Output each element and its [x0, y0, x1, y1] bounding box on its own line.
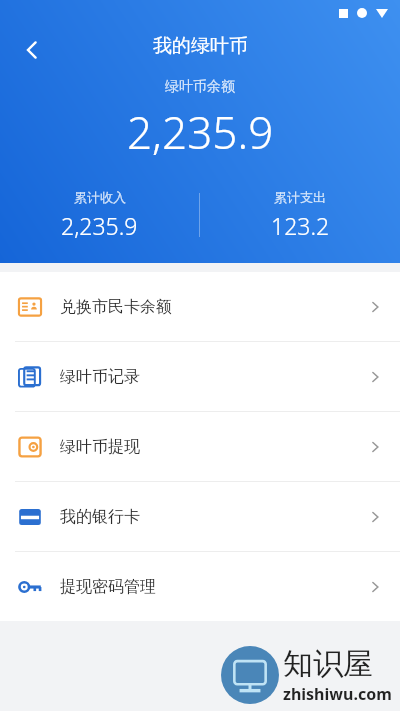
staticText: 我的银行卡: [60, 507, 140, 527]
staticText: 提现密码管理: [60, 577, 156, 597]
staticText: 累计收入: [74, 189, 126, 205]
staticText: 我的绿叶币: [153, 34, 248, 58]
button[interactable]: Back: [12, 30, 52, 70]
staticText: 知识屋: [283, 645, 373, 683]
staticText: 2,235.9: [61, 210, 138, 241]
staticText: 累计支出: [274, 189, 326, 205]
staticText: 2,235.9: [127, 102, 274, 162]
staticText: zhishiwu.com: [283, 683, 392, 705]
staticText: 123.2: [271, 210, 330, 241]
button[interactable]: 绿叶币提现: [0, 412, 400, 481]
staticText: 绿叶币提现: [60, 437, 140, 457]
button[interactable]: 提现密码管理: [0, 552, 400, 621]
button[interactable]: 绿叶币记录: [0, 342, 400, 411]
staticText: 绿叶币余额: [165, 78, 235, 96]
button[interactable]: 我的银行卡: [0, 482, 400, 551]
button[interactable]: 兑换市民卡余额: [0, 272, 400, 341]
staticText: 兑换市民卡余额: [60, 297, 172, 317]
staticText: 绿叶币记录: [60, 367, 140, 387]
